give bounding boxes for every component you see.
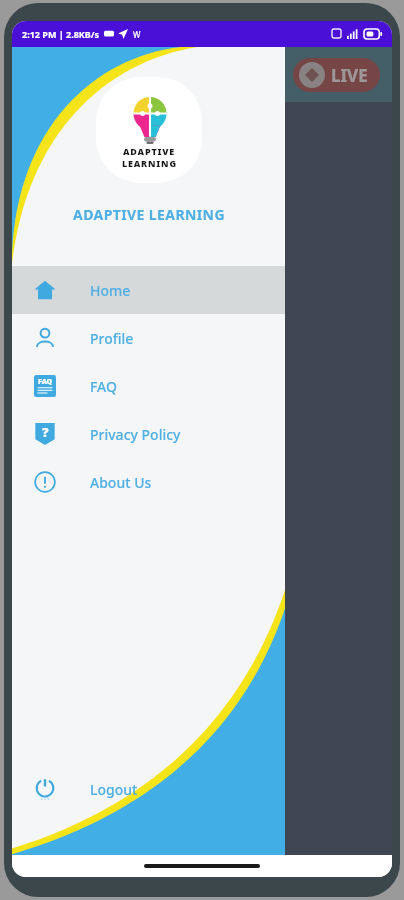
- staticText: Privacy Policy: [90, 425, 181, 444]
- staticText: LEARNING: [122, 157, 177, 169]
- button[interactable]: Privacy Policy: [12, 410, 285, 458]
- button[interactable]: FAQ: [12, 362, 285, 410]
- other: Privacy Policy: [34, 423, 56, 445]
- staticText: LIVE: [331, 64, 368, 87]
- staticText: Logout: [90, 780, 138, 799]
- button[interactable]: Home: [12, 266, 285, 314]
- staticText: ADAPTIVE: [123, 145, 176, 157]
- staticText: Home: [90, 281, 131, 300]
- other: FAQ: [34, 375, 56, 397]
- staticText: FAQ: [38, 377, 53, 387]
- staticText: ?: [42, 423, 49, 441]
- button[interactable]: About Us: [12, 458, 285, 506]
- button[interactable]: LIVE: [293, 58, 380, 92]
- staticText: FAQ: [90, 377, 117, 396]
- button[interactable]: Logout: [12, 765, 285, 813]
- staticText: About Us: [90, 473, 152, 492]
- button[interactable]: Profile: [12, 314, 285, 362]
- other: Profile: [34, 327, 56, 349]
- other: About Us: [34, 471, 56, 493]
- other: Logout: [34, 778, 56, 800]
- other: Home: [34, 279, 56, 301]
- staticText: W: [133, 29, 141, 40]
- staticText: 2:12 PM | 2.8KB/s: [22, 28, 100, 40]
- staticText: ADAPTIVE LEARNING: [73, 205, 225, 224]
- staticText: Profile: [90, 329, 134, 348]
